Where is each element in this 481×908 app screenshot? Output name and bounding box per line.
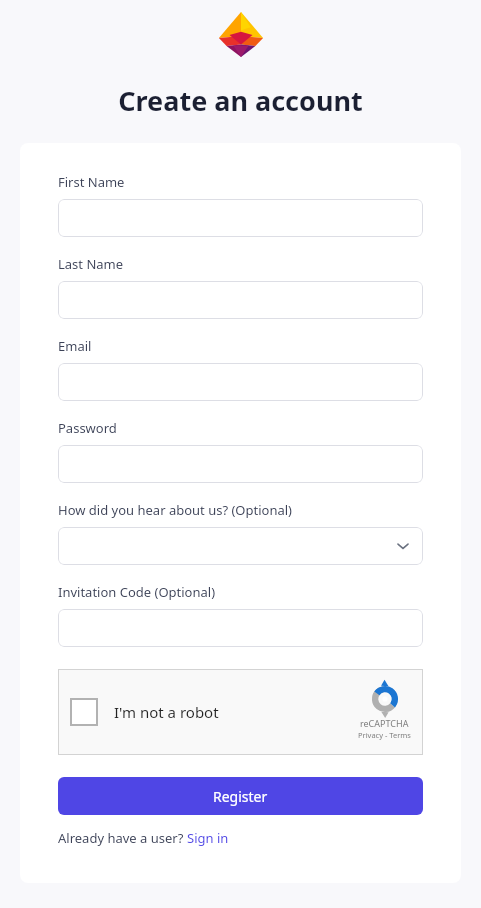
button[interactable]: How did you hear about us? (Optional) bbox=[58, 527, 423, 565]
staticText: First Name bbox=[58, 173, 125, 191]
staticText: Last Name bbox=[58, 255, 124, 273]
button[interactable]: reCAPTCHA I'm not a robot bbox=[58, 669, 423, 755]
staticText: I'm not a robot bbox=[114, 702, 219, 722]
button[interactable]: Invitation Code (Optional) bbox=[58, 609, 423, 647]
button[interactable]: Last Name bbox=[58, 281, 423, 319]
button[interactable]: Password bbox=[58, 445, 423, 483]
button[interactable]: Register bbox=[58, 777, 423, 815]
staticText: How did you hear about us? (Optional) bbox=[58, 501, 292, 519]
staticText: reCAPTCHA bbox=[360, 717, 409, 729]
staticText: Privacy - Terms bbox=[358, 730, 411, 740]
button[interactable]: Email bbox=[58, 363, 423, 401]
button[interactable]: Sign in bbox=[187, 829, 229, 847]
staticText: Register bbox=[213, 787, 268, 806]
staticText: Invitation Code (Optional) bbox=[58, 583, 216, 601]
staticText: Password bbox=[58, 419, 117, 437]
staticText: Sign in bbox=[187, 829, 229, 847]
button[interactable]: First Name bbox=[58, 199, 423, 237]
staticText: Email bbox=[58, 337, 92, 355]
staticText: Create an account bbox=[118, 82, 363, 119]
staticText: Already have a user? bbox=[58, 829, 187, 847]
